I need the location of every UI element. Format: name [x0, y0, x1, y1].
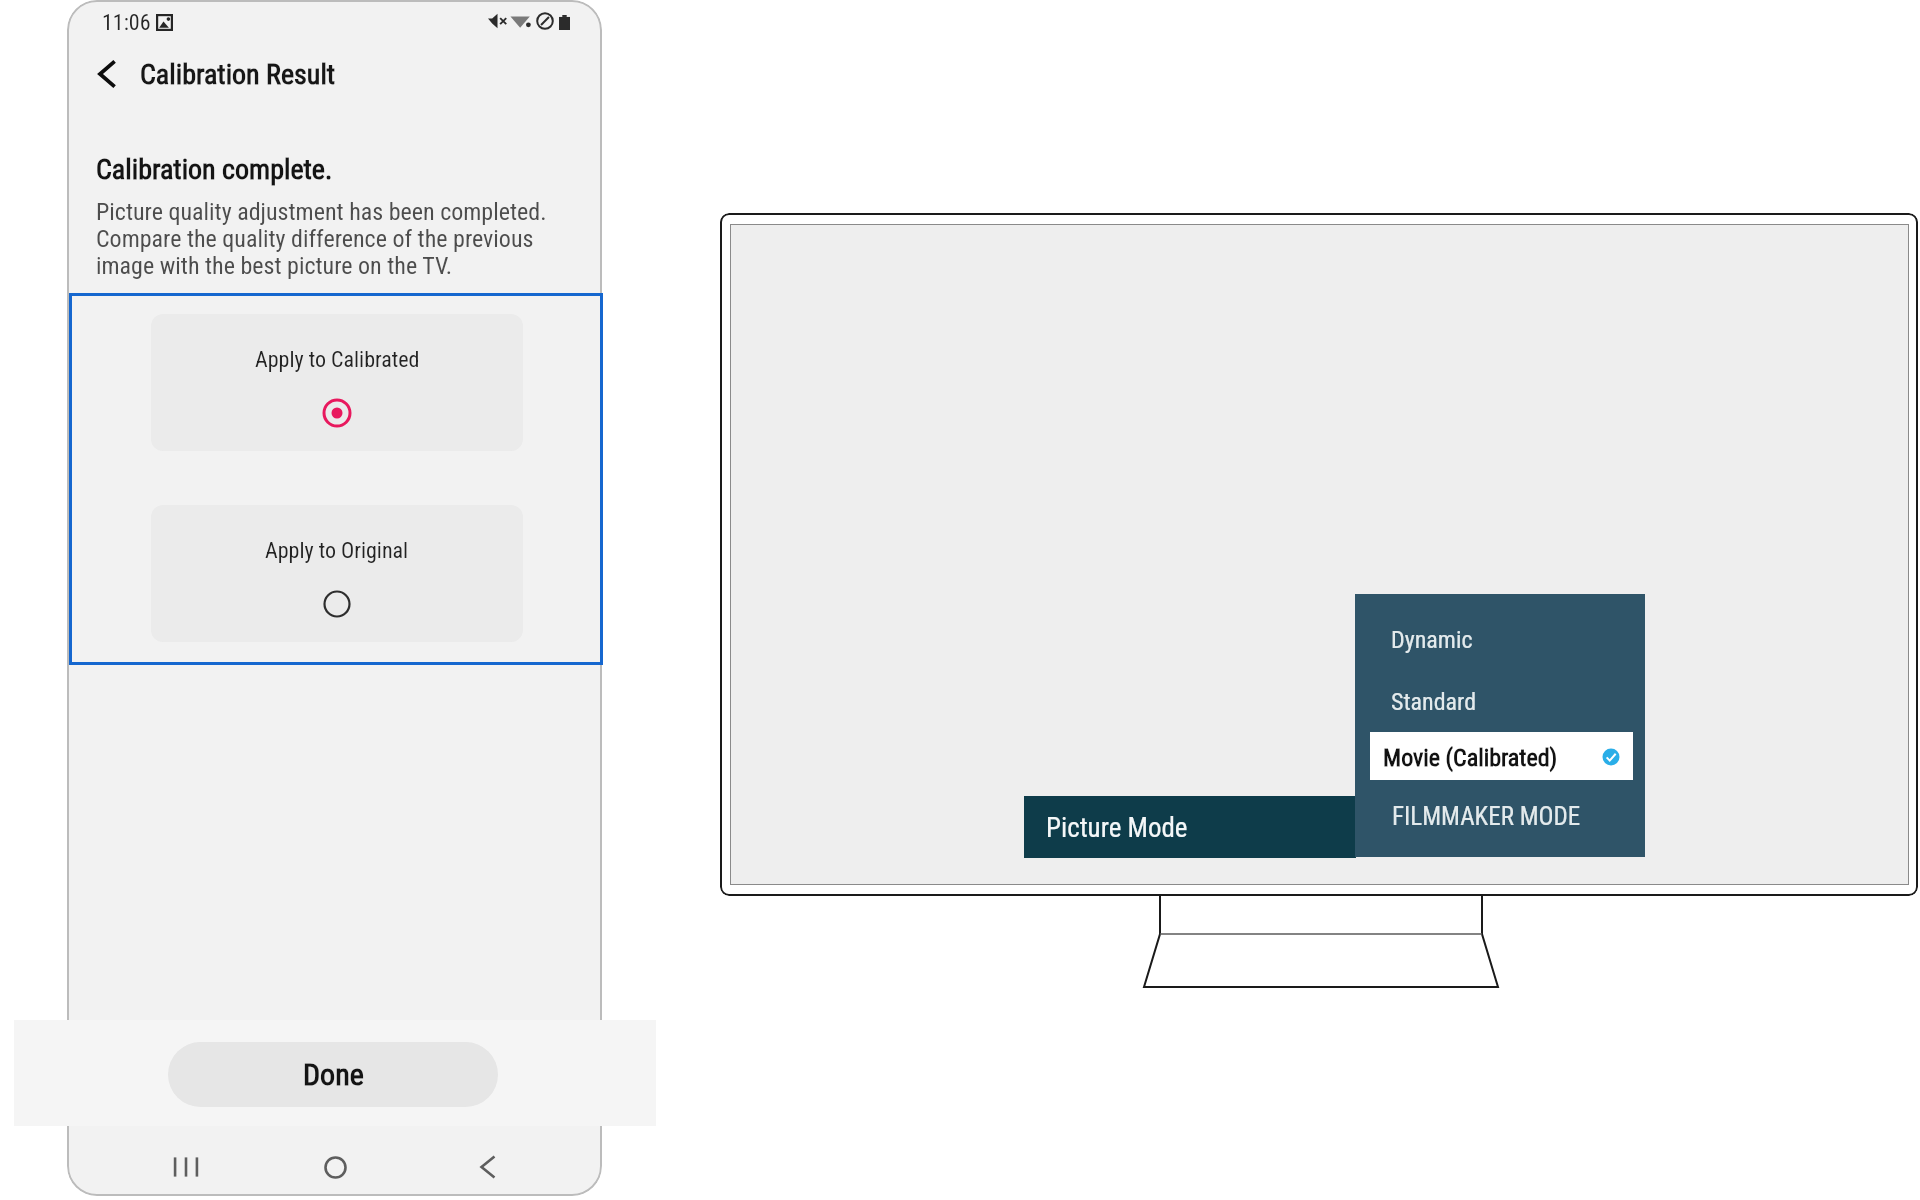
button[interactable]: Dynamic: [1370, 614, 1633, 664]
staticText: Standard: [1391, 688, 1477, 716]
staticText: Picture Mode: [1046, 812, 1188, 844]
button[interactable]: Done: [168, 1042, 498, 1107]
button[interactable]: Picture Mode: [1024, 796, 1356, 858]
button[interactable]: Apply to Original: [151, 505, 523, 642]
staticText: 11:06: [102, 10, 151, 36]
staticText: Calibration Result: [140, 58, 336, 91]
staticText: Apply to Calibrated: [255, 347, 420, 373]
button[interactable]: Back: [84, 51, 130, 97]
staticText: Done: [303, 1057, 364, 1092]
button[interactable]: Standard: [1370, 676, 1633, 726]
button[interactable]: [14, 1020, 656, 1126]
button[interactable]: Home: [305, 1142, 365, 1192]
staticText: Dynamic: [1391, 626, 1473, 654]
staticText: FILMMAKER MODE: [1392, 802, 1581, 831]
button[interactable]: Recent apps: [156, 1142, 216, 1192]
button[interactable]: Apply to Calibrated: [151, 314, 523, 451]
button[interactable]: Back: [458, 1142, 518, 1192]
staticText: Apply to Original: [265, 538, 409, 564]
staticText: Movie (Calibrated): [1383, 744, 1558, 772]
button[interactable]: Movie (Calibrated): [1370, 732, 1633, 780]
staticText: Calibration complete.: [96, 153, 333, 186]
button[interactable]: FILMMAKER MODE: [1370, 790, 1633, 840]
staticText: Picture quality adjustment has been comp…: [96, 198, 547, 280]
